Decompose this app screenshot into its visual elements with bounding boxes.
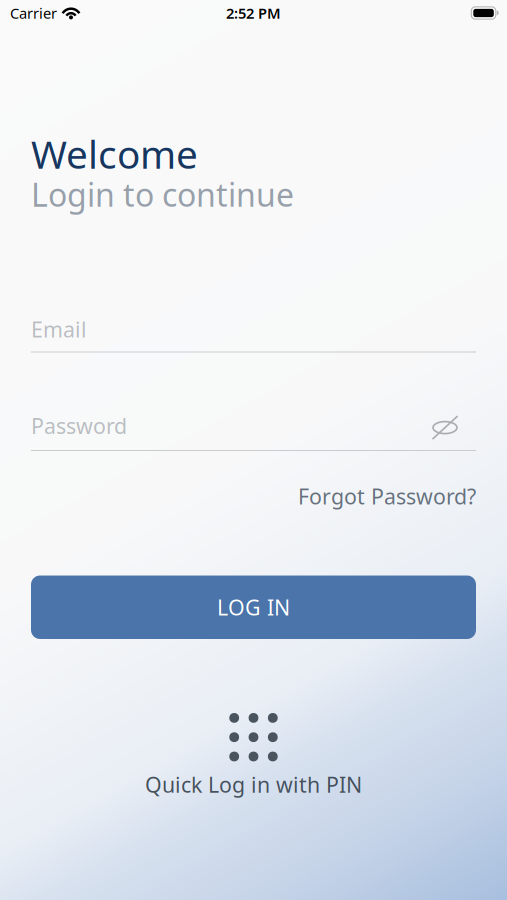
staticText: Login to continue: [31, 173, 294, 215]
staticText: Carrier: [10, 3, 57, 23]
button[interactable]: Email: [31, 315, 476, 352]
button[interactable]: Forgot Password?: [298, 482, 476, 510]
button[interactable]: LOG IN: [31, 575, 476, 639]
staticText: 2:52 PM: [226, 3, 281, 23]
staticText: Quick Log in with PIN: [145, 770, 362, 799]
staticText: Forgot Password?: [298, 482, 476, 510]
button[interactable]: Show password: [432, 416, 458, 440]
staticText: Password: [31, 412, 127, 440]
staticText: Email: [31, 315, 87, 343]
staticText: LOG IN: [217, 593, 290, 621]
button[interactable]: Quick Log in with PIN: [145, 713, 362, 799]
staticText: Welcome: [31, 128, 198, 179]
button[interactable]: Password: [31, 412, 476, 451]
